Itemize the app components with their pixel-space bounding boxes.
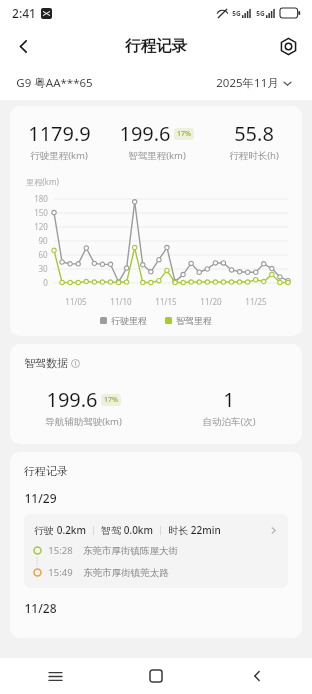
staticText: 90	[38, 235, 48, 246]
staticText: 15:28	[48, 544, 73, 557]
staticText: 150	[34, 207, 48, 218]
staticText: 行程记录	[125, 36, 187, 56]
staticText: 15:49	[48, 566, 73, 579]
button[interactable]: Back	[242, 661, 272, 691]
staticText: 智驾里程	[176, 315, 212, 326]
staticText: 智驾 0.0km	[101, 523, 153, 537]
staticText: 199.6	[46, 386, 98, 413]
staticText: 17%	[104, 395, 118, 405]
staticText: 11/05	[65, 296, 87, 307]
staticText: 行程记录	[24, 464, 68, 478]
staticText: 11/28	[24, 600, 57, 616]
staticText: 120	[34, 221, 48, 232]
staticText: 行驶 0.2km	[34, 523, 86, 537]
staticText: 行驶里程(km)	[30, 149, 88, 162]
staticText: 时长 22min	[168, 523, 221, 537]
staticText: 1	[223, 386, 235, 413]
staticText: 1179.9	[28, 120, 91, 147]
staticText: 11/29	[24, 490, 57, 506]
button[interactable]: 2025年11月	[212, 71, 296, 95]
staticText: 2025年11月	[216, 75, 279, 91]
staticText: 自动泊车(次)	[202, 415, 256, 428]
staticText: 0	[43, 277, 48, 288]
button[interactable]: Back	[6, 29, 40, 63]
staticText: G9 粤AA***65	[16, 75, 93, 91]
button[interactable]: Home	[141, 661, 171, 691]
staticText: 30	[38, 263, 48, 274]
other: Info	[71, 359, 80, 368]
button[interactable]: Recents	[40, 661, 70, 691]
button[interactable]: 智驾数据	[24, 356, 80, 370]
staticText: 行程时长(h)	[229, 149, 279, 162]
staticText: 东莞市厚街镇陈屋大街	[83, 545, 178, 557]
staticText: 5G	[256, 9, 265, 18]
staticText: 东莞市厚街镇莞太路	[83, 567, 169, 579]
staticText: 5G	[232, 9, 241, 18]
staticText: 智驾数据	[24, 356, 68, 370]
staticText: 导航辅助驾驶(km)	[45, 415, 122, 428]
staticText: 199.6	[119, 120, 171, 147]
staticText: 智驾里程(km)	[128, 149, 186, 162]
staticText: 17%	[177, 129, 191, 139]
staticText: 180	[34, 193, 48, 204]
staticText: 11/25	[245, 296, 267, 307]
staticText: 2:41	[12, 5, 36, 21]
staticText: 55.8	[234, 120, 274, 147]
staticText: 11/15	[155, 296, 177, 307]
staticText: 11/10	[110, 296, 132, 307]
button[interactable]: 行驶 0.2km	[24, 514, 288, 588]
staticText: 行驶里程	[111, 315, 147, 326]
staticText: 11/20	[200, 296, 222, 307]
button[interactable]: Settings	[272, 30, 304, 62]
staticText: 60	[38, 249, 48, 260]
staticText: 里程(km)	[26, 176, 59, 187]
